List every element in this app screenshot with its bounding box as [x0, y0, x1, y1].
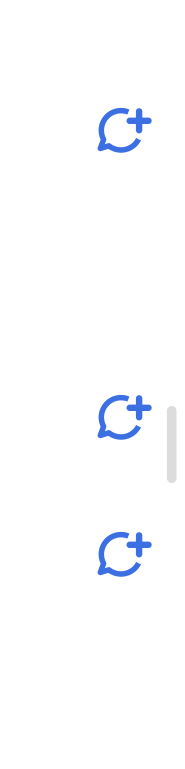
button[interactable]: New message: [96, 102, 156, 158]
button[interactable]: New message: [96, 526, 156, 582]
button[interactable]: New message: [96, 389, 156, 445]
